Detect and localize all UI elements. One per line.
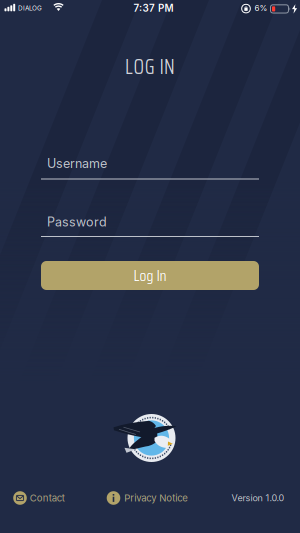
- staticText: Contact: [30, 492, 65, 504]
- staticText: 6%: [254, 3, 267, 13]
- secureTextField[interactable]: Password: [41, 214, 259, 237]
- staticText: Password: [47, 214, 107, 230]
- button[interactable]: Log In: [41, 261, 259, 290]
- staticText: Username: [47, 156, 107, 171]
- staticText: LOG IN: [125, 51, 175, 83]
- staticText: Version 1.0.0: [231, 492, 284, 503]
- button[interactable]: Contact: [13, 491, 65, 505]
- staticText: DIALOG: [18, 4, 42, 12]
- staticText: Log In: [133, 263, 166, 288]
- staticText: 7:37 PM: [133, 2, 173, 14]
- textField[interactable]: Username: [41, 155, 259, 179]
- button[interactable]: Privacy Notice: [107, 491, 188, 505]
- staticText: Privacy Notice: [124, 492, 188, 504]
